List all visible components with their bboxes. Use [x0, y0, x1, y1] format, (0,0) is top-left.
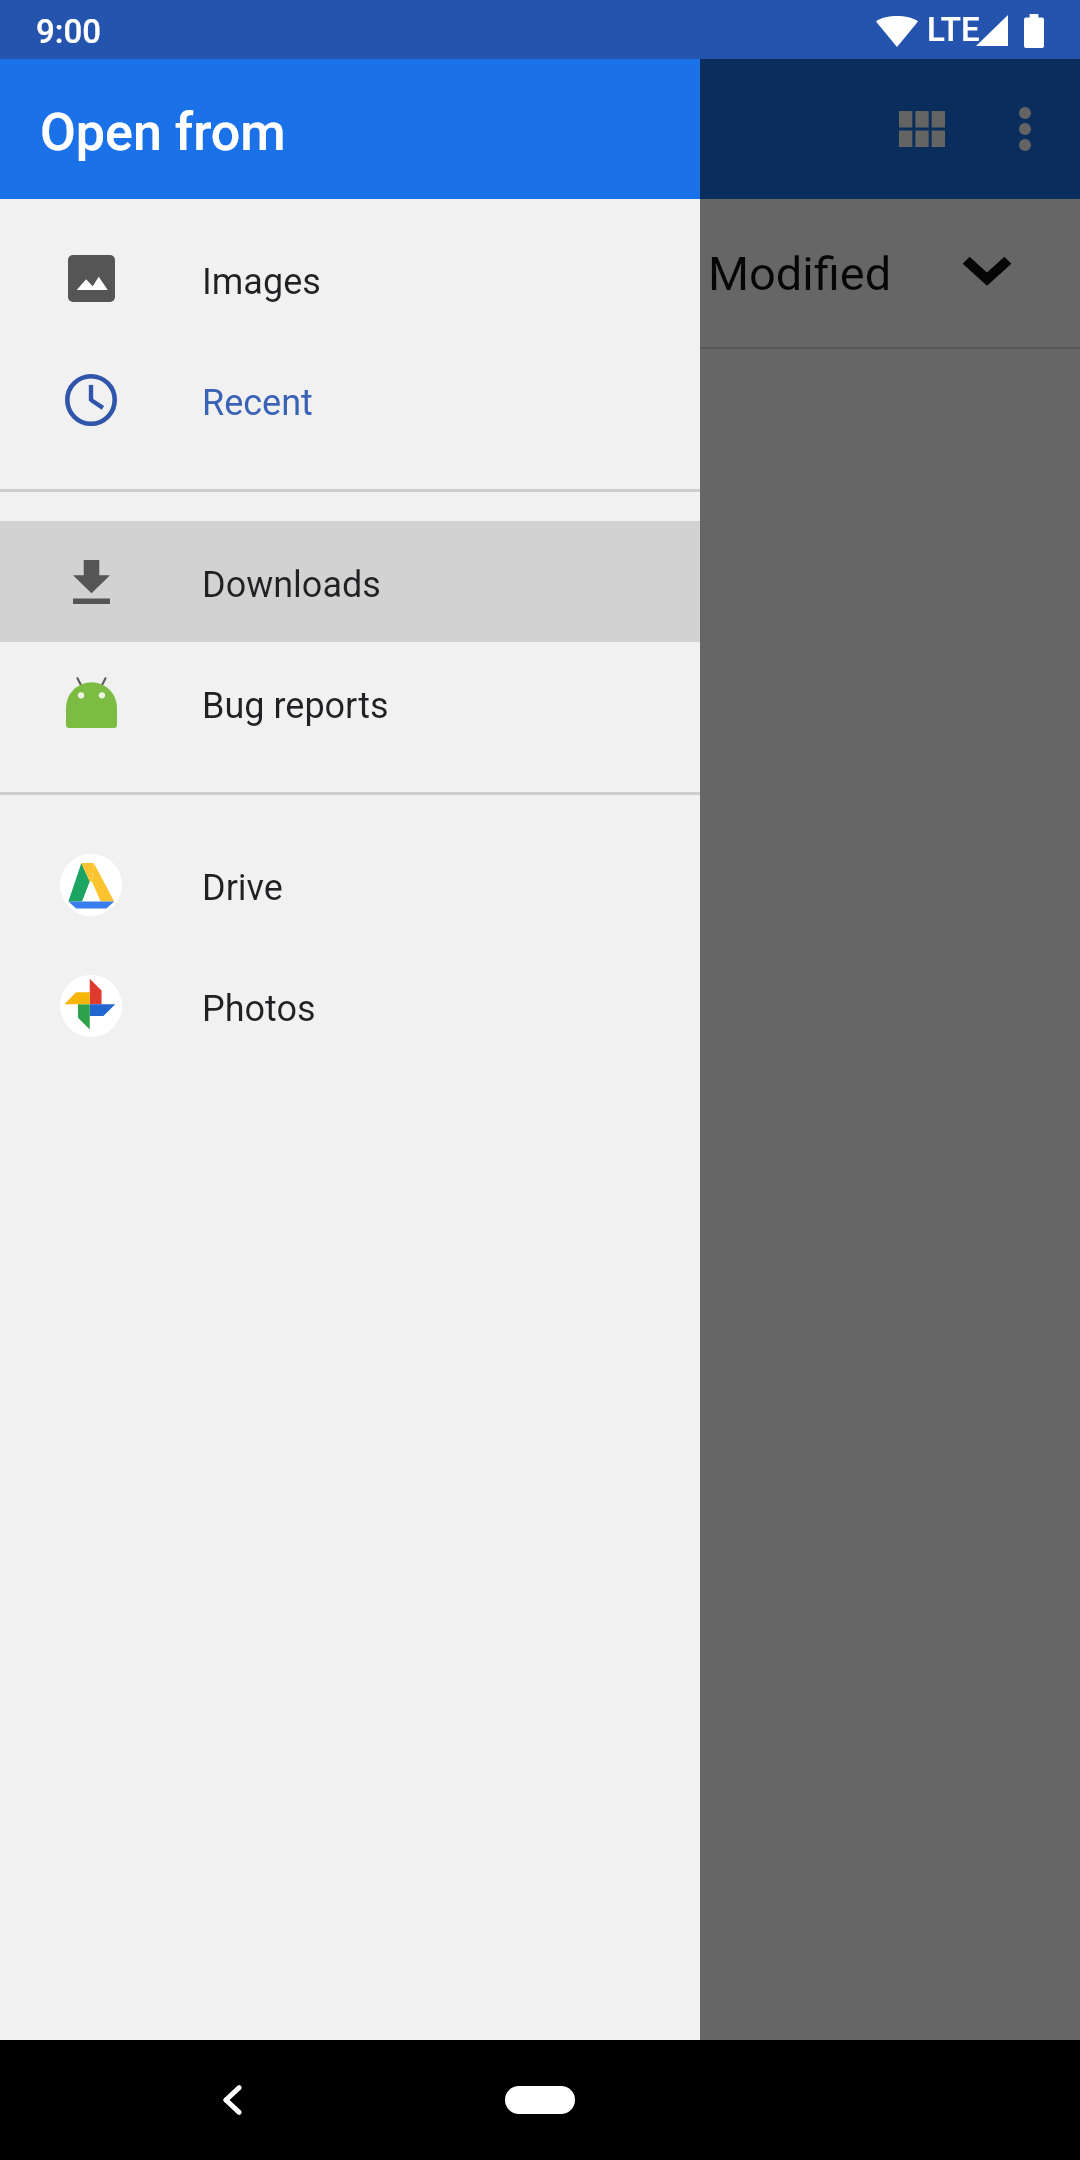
- button[interactable]: Grid view: [861, 68, 983, 190]
- button[interactable]: Home: [505, 2086, 575, 2114]
- button[interactable]: Photos: [0, 945, 700, 1066]
- staticText: Photos: [202, 988, 316, 1030]
- staticText: Recent: [202, 382, 313, 424]
- button[interactable]: Drive: [0, 824, 700, 945]
- staticText: Drive: [202, 867, 283, 909]
- button[interactable]: Recent: [0, 339, 700, 460]
- staticText: LTE: [927, 10, 980, 49]
- staticText: Downloads: [202, 564, 381, 606]
- button[interactable]: Back: [178, 2045, 288, 2155]
- button[interactable]: Bug reports: [0, 642, 700, 763]
- button[interactable]: Images: [0, 218, 700, 339]
- staticText: Open from: [40, 102, 286, 163]
- button[interactable]: Downloads: [0, 521, 700, 642]
- staticText: Modified: [708, 246, 892, 301]
- staticText: 9:00: [36, 12, 101, 51]
- staticText: Bug reports: [202, 685, 389, 727]
- button[interactable]: Modified: [694, 214, 1030, 332]
- button[interactable]: More options: [964, 68, 1080, 190]
- staticText: Images: [202, 261, 321, 303]
